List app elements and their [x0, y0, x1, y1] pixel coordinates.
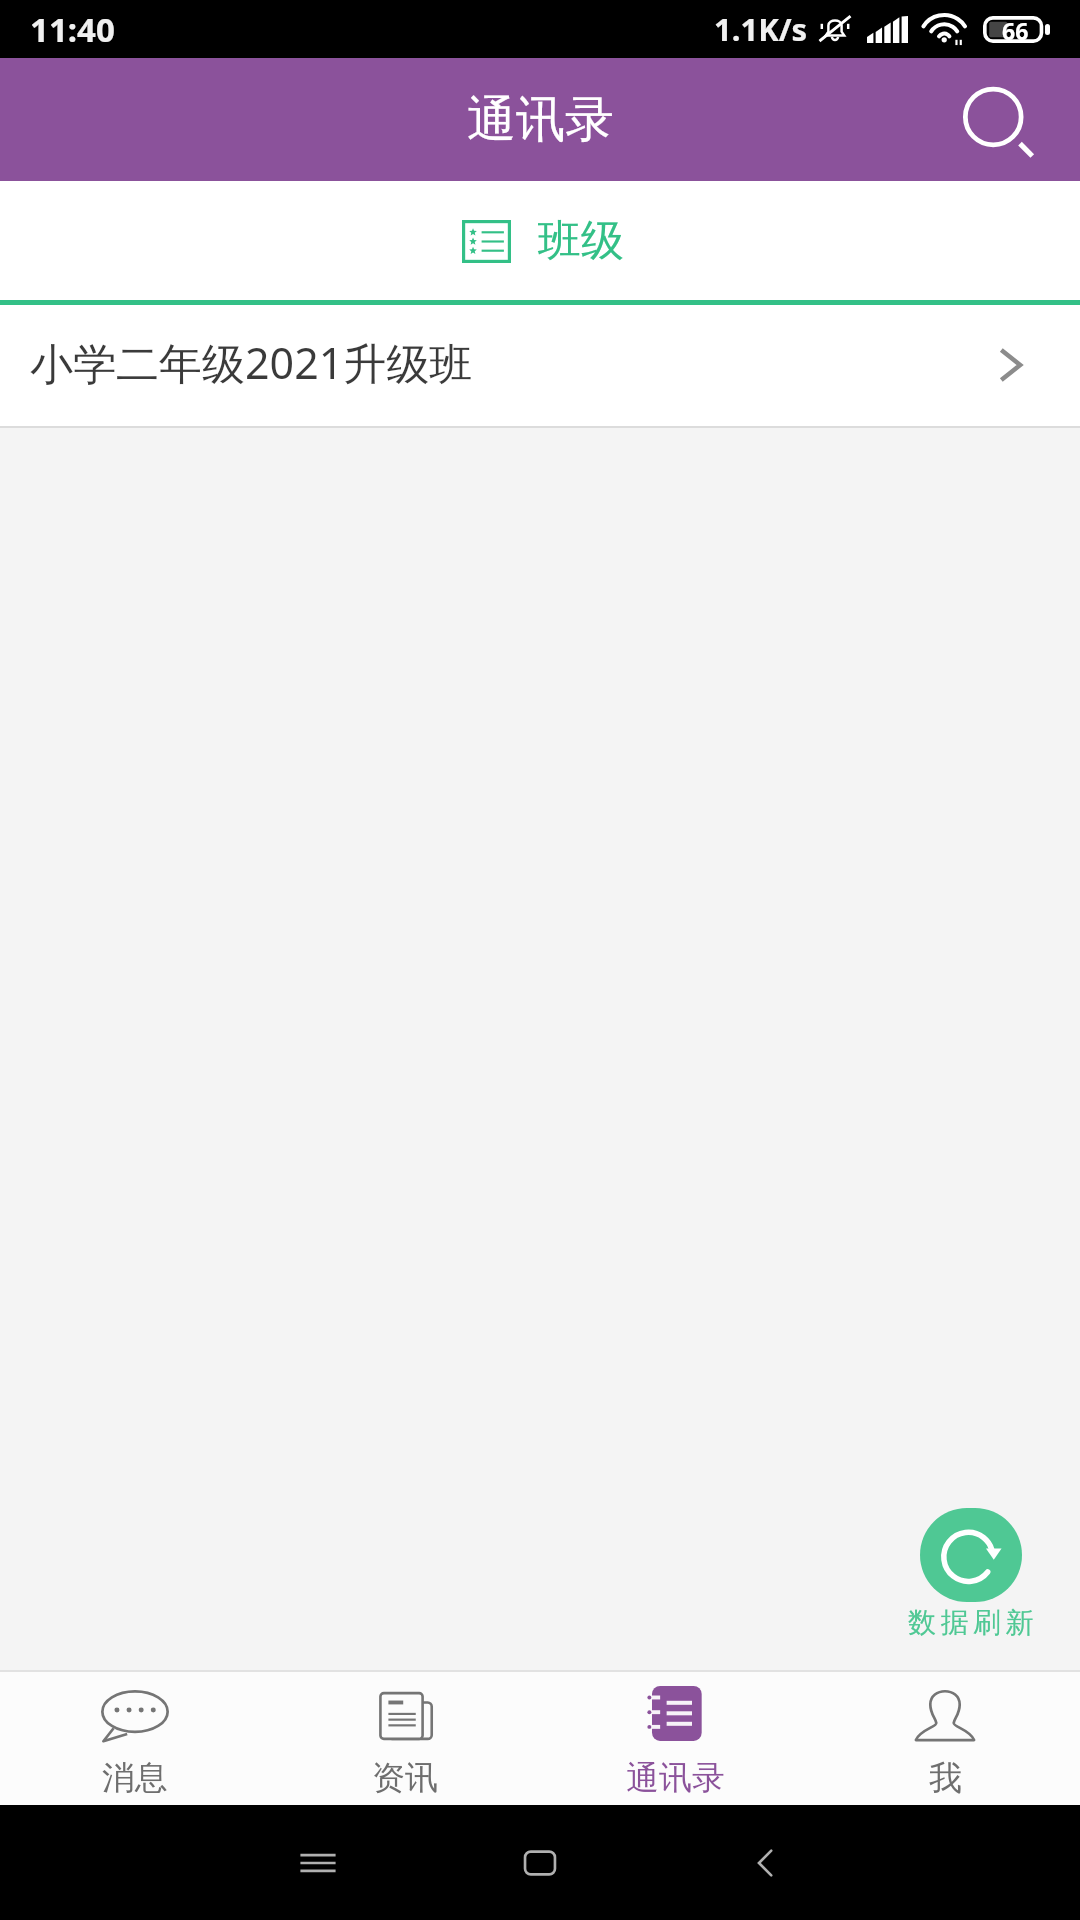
- button[interactable]: 小学二年级2021升级班: [0, 305, 1080, 426]
- staticText: 资讯: [372, 1757, 438, 1799]
- button[interactable]: 数据刷新 Refresh data: [908, 1508, 1038, 1637]
- staticText: 小学二年级2021升级班: [30, 333, 473, 392]
- button[interactable]: 消息: [0, 1672, 270, 1805]
- button[interactable]: Search: [946, 68, 1050, 172]
- staticText: 我: [929, 1757, 962, 1799]
- staticText: 班级: [538, 214, 624, 268]
- other: Back: [744, 1841, 788, 1885]
- staticText: 66: [1002, 15, 1029, 42]
- button[interactable]: 通讯录: [540, 1672, 810, 1805]
- staticText: 通讯录: [467, 89, 614, 151]
- staticText: 11:40: [30, 7, 115, 52]
- other: Recents: [296, 1841, 340, 1885]
- button[interactable]: 资讯: [270, 1672, 540, 1805]
- staticText: 消息: [102, 1757, 168, 1799]
- staticText: 1.1K/s: [714, 8, 808, 50]
- other: Home: [518, 1841, 562, 1885]
- button[interactable]: 我: [810, 1672, 1080, 1805]
- staticText: 通讯录: [626, 1757, 725, 1799]
- staticText: 数据刷新: [908, 1605, 1038, 1640]
- button[interactable]: 班级: [0, 181, 1080, 300]
